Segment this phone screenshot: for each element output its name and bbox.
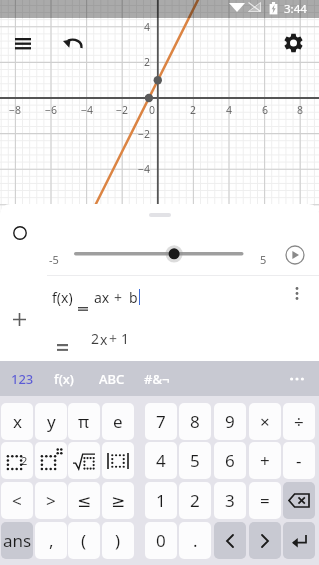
staticText: 2 xyxy=(21,453,28,468)
staticText: x xyxy=(100,330,108,349)
button[interactable]: Settings xyxy=(275,25,311,61)
staticText: 2 xyxy=(190,103,197,117)
staticText: 2 xyxy=(190,489,200,512)
button[interactable]: 2 xyxy=(179,482,211,519)
staticText: #&¬ xyxy=(144,370,170,388)
button[interactable]: 123 xyxy=(0,361,44,396)
staticText: -5 xyxy=(49,252,59,267)
button[interactable]: Absolute value xyxy=(102,442,134,479)
staticText: f(x) xyxy=(52,288,73,307)
button[interactable]: ÷ xyxy=(283,403,315,440)
button[interactable]: + xyxy=(249,442,281,479)
staticText: 4 xyxy=(226,103,233,117)
staticText: + xyxy=(260,449,270,472)
staticText: + xyxy=(109,329,118,348)
button[interactable]: × xyxy=(249,403,281,440)
staticText: 0 xyxy=(149,103,156,117)
staticText: ax xyxy=(94,288,110,307)
staticText: > xyxy=(46,489,56,512)
staticText: < xyxy=(12,489,22,512)
staticText: ( xyxy=(81,529,87,552)
button[interactable]: , xyxy=(35,522,67,559)
staticText: 8 xyxy=(297,103,304,117)
button[interactable]: 3 xyxy=(214,482,246,519)
button[interactable]: Slider a xyxy=(66,244,251,274)
button[interactable]: Enter xyxy=(283,522,315,559)
button[interactable]: f(x) xyxy=(44,284,284,310)
button[interactable]: Backspace xyxy=(283,482,315,519)
button[interactable]: Power xyxy=(35,442,67,479)
button[interactable]: Move right xyxy=(249,522,281,559)
staticText: b xyxy=(129,288,138,307)
staticText: 123 xyxy=(11,370,34,388)
staticText: 1 xyxy=(156,489,166,512)
staticText: - xyxy=(296,449,302,472)
button[interactable]: More keys xyxy=(281,361,313,396)
button[interactable]: 2 xyxy=(44,327,284,349)
button[interactable]: ≥ xyxy=(102,482,134,519)
button[interactable]: < xyxy=(1,482,33,519)
button[interactable]: Add expression xyxy=(9,309,29,329)
staticText: 4 xyxy=(144,20,151,34)
staticText: ) xyxy=(115,529,121,552)
staticText: ans xyxy=(3,529,32,552)
button[interactable]: = xyxy=(249,482,281,519)
staticText: × xyxy=(260,410,270,433)
button[interactable]: Move left xyxy=(214,522,246,559)
staticText: 7 xyxy=(156,410,166,433)
staticText: 3 xyxy=(225,489,235,512)
button[interactable]: 0 xyxy=(145,522,177,559)
staticText: . xyxy=(193,529,198,552)
staticText: ≤ xyxy=(77,491,92,511)
button[interactable]: 9 xyxy=(214,403,246,440)
staticText: 6 xyxy=(225,449,235,472)
staticText: f(x) xyxy=(54,370,74,388)
staticText: 2 xyxy=(144,55,151,69)
staticText: 4 xyxy=(156,449,166,472)
button[interactable]: #&¬ xyxy=(135,361,179,396)
button[interactable]: π xyxy=(68,403,100,440)
button[interactable]: 8 xyxy=(179,403,211,440)
staticText: 0 xyxy=(156,529,166,552)
button[interactable]: ans xyxy=(1,522,33,559)
staticText: 3:44 xyxy=(284,1,307,17)
staticText: −2 xyxy=(116,103,129,117)
button[interactable]: Toggle visibility xyxy=(10,223,30,243)
staticText: , xyxy=(49,529,54,552)
button[interactable]: More options xyxy=(285,282,308,305)
button[interactable]: f(x) xyxy=(42,361,86,396)
staticText: 6 xyxy=(262,103,269,117)
button[interactable]: Square xyxy=(1,442,33,479)
button[interactable]: 5 xyxy=(179,442,211,479)
button[interactable]: ≤ xyxy=(68,482,100,519)
button[interactable]: ( xyxy=(68,522,100,559)
button[interactable]: y xyxy=(35,403,67,440)
button[interactable]: 7 xyxy=(145,403,177,440)
button[interactable]: ABC xyxy=(90,361,134,396)
staticText: 5 xyxy=(190,449,200,472)
staticText: π xyxy=(78,410,90,433)
staticText: −2 xyxy=(138,127,151,141)
button[interactable]: Undo xyxy=(54,25,90,61)
button[interactable]: e xyxy=(102,403,134,440)
button[interactable]: - xyxy=(283,442,315,479)
button[interactable]: 1 xyxy=(145,482,177,519)
staticText: ÷ xyxy=(294,410,304,433)
staticText: −8 xyxy=(9,103,22,117)
button[interactable]: Square root xyxy=(68,442,100,479)
staticText: −6 xyxy=(45,103,58,117)
button[interactable]: > xyxy=(35,482,67,519)
staticText: 1 xyxy=(121,329,130,348)
staticText: e xyxy=(113,410,123,433)
button[interactable]: x xyxy=(1,403,33,440)
staticText: 5 xyxy=(260,252,267,267)
staticText: −4 xyxy=(138,162,151,176)
staticText: + xyxy=(114,288,123,307)
button[interactable]: 6 xyxy=(214,442,246,479)
staticText: 2 xyxy=(91,329,100,348)
button[interactable]: Play animation xyxy=(283,243,307,267)
button[interactable]: 4 xyxy=(145,442,177,479)
button[interactable]: ) xyxy=(102,522,134,559)
button[interactable]: Menu xyxy=(6,25,40,61)
button[interactable]: . xyxy=(179,522,211,559)
